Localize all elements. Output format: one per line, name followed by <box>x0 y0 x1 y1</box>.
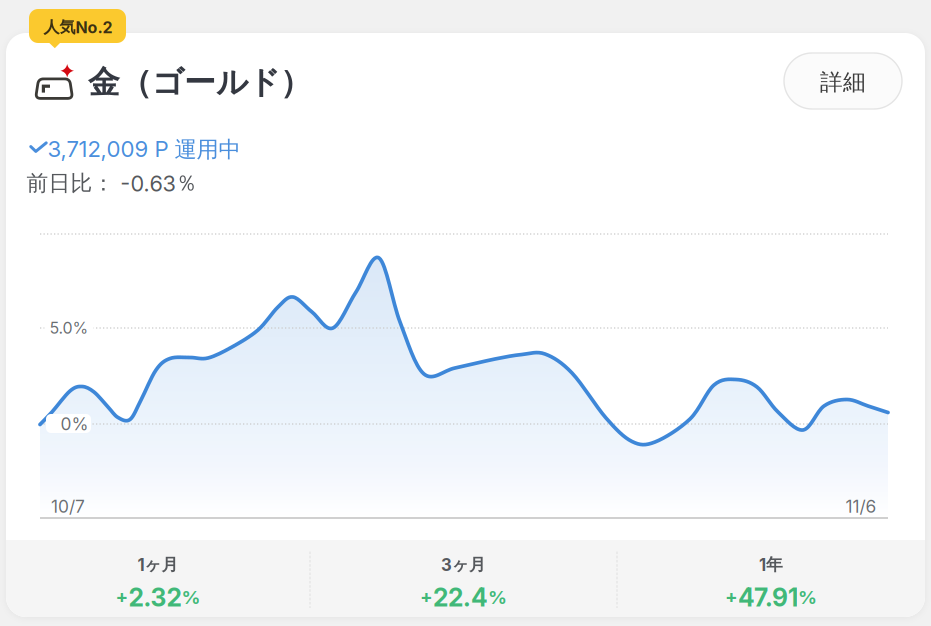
button[interactable]: 3ヶ月 <box>310 540 617 617</box>
staticText: 3,712,009 P 運用中 <box>47 135 240 164</box>
staticText: + <box>725 585 738 607</box>
button[interactable]: 1ヶ月 <box>6 540 310 617</box>
button[interactable]: 1年 <box>617 540 925 617</box>
staticText: 2.32 <box>128 582 181 612</box>
staticText: 3ヶ月 <box>441 554 486 575</box>
staticText: 前日比： -0.63％ <box>26 169 197 197</box>
staticText: + <box>420 585 433 607</box>
staticText: + <box>115 585 128 607</box>
staticText: 人気No.2 <box>43 17 112 37</box>
staticText: 11/6 <box>845 496 876 517</box>
staticText: 47.91 <box>738 582 798 612</box>
staticText: 0% <box>60 413 88 434</box>
staticText: % <box>798 586 817 608</box>
staticText: % <box>488 586 507 608</box>
staticText: 詳細 <box>820 68 866 96</box>
staticText: 金（ゴールド） <box>88 62 312 102</box>
button[interactable]: 詳細 <box>784 53 902 109</box>
staticText: 5.0% <box>49 318 88 338</box>
staticText: % <box>181 586 200 608</box>
staticText: 22.4 <box>433 582 488 612</box>
staticText: 10/7 <box>51 496 85 517</box>
staticText: 1ヶ月 <box>137 554 178 575</box>
staticText: 1年 <box>759 554 783 575</box>
